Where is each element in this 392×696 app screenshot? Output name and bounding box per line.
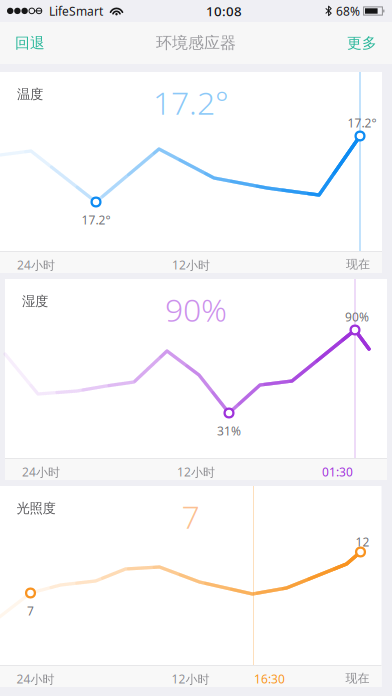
staticText: 01:30 (322, 464, 353, 480)
staticText: LifeSmart (49, 3, 103, 19)
staticText: 更多 (347, 34, 377, 52)
staticText: 68% (336, 3, 360, 19)
staticText: 90% (345, 309, 369, 325)
staticText: 90% (165, 288, 227, 330)
staticText: 17.2° (81, 212, 110, 228)
staticText: 24小时 (22, 464, 60, 480)
staticText: 现在 (345, 671, 369, 686)
staticText: 7 (181, 495, 199, 537)
staticText: 10:08 (206, 2, 242, 20)
staticText: 7 (27, 603, 34, 619)
staticText: 24小时 (17, 257, 55, 273)
staticText: 17.2° (153, 81, 229, 123)
staticText: 现在 (346, 257, 370, 272)
staticText: 17.2° (347, 115, 376, 131)
button[interactable]: 回退 (0, 21, 60, 65)
staticText: 12小时 (171, 671, 209, 687)
staticText: 16:30 (254, 671, 285, 687)
staticText: 12小时 (177, 464, 215, 480)
staticText: 回退 (15, 34, 45, 52)
staticText: 环境感应器 (156, 33, 236, 53)
staticText: 12 (355, 534, 369, 550)
staticText: 24小时 (16, 671, 54, 687)
staticText: 湿度 (22, 293, 48, 309)
button[interactable]: 更多 (332, 21, 392, 65)
staticText: 31% (217, 423, 241, 439)
staticText: 12小时 (172, 257, 210, 273)
staticText: 光照度 (16, 500, 55, 516)
staticText: 温度 (17, 86, 43, 102)
